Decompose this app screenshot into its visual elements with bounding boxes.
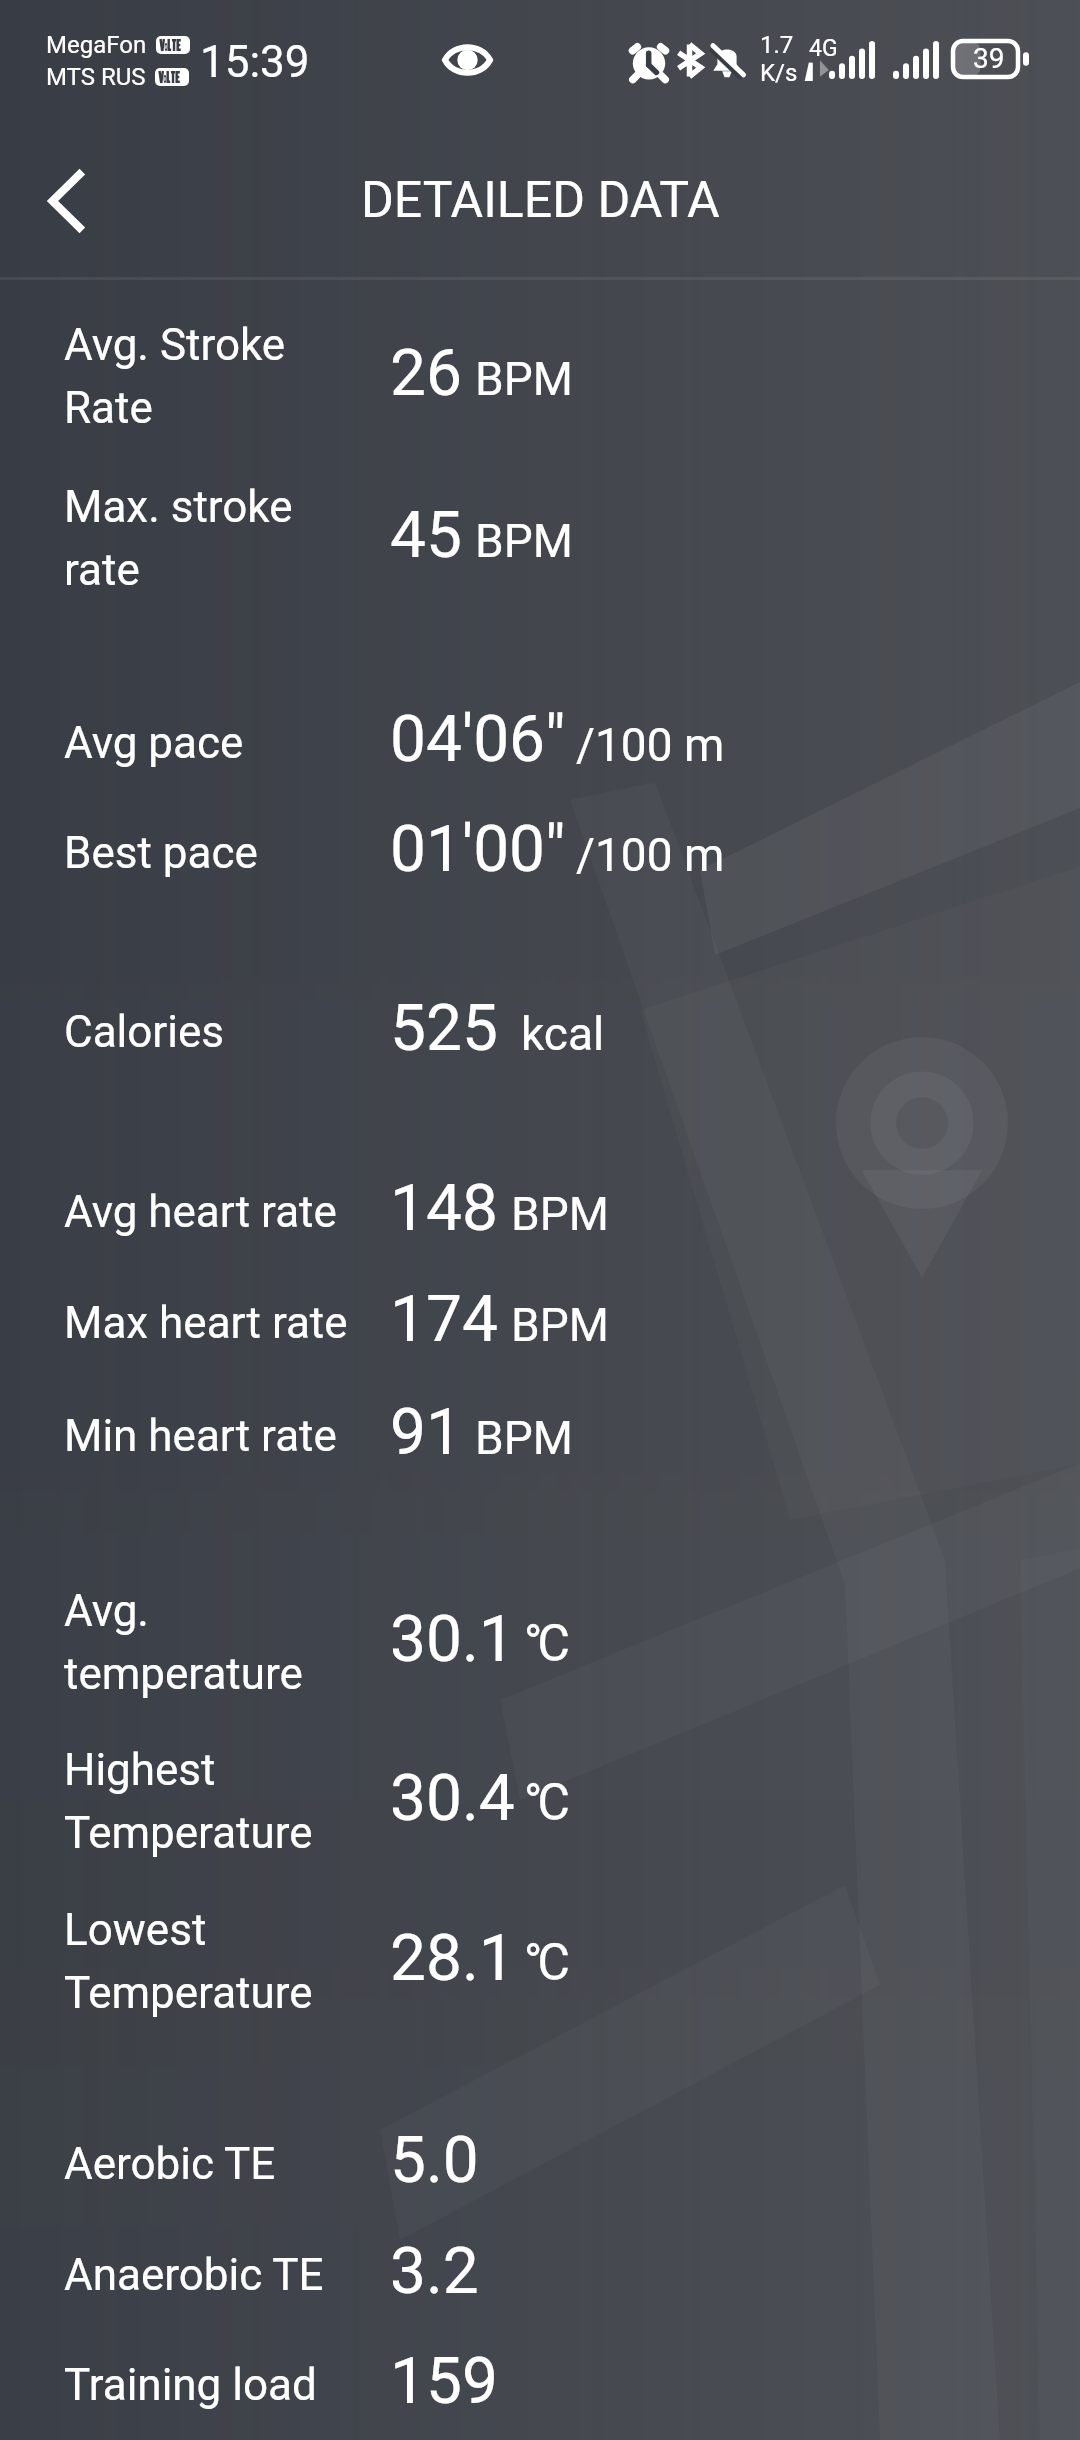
staticText: BPM (511, 1187, 609, 1241)
staticText: /100 m (576, 718, 725, 772)
staticText: ℃ (526, 1933, 570, 1992)
staticText: 1.7 (760, 31, 794, 59)
staticText: Max. stroke rate (64, 481, 364, 596)
staticText: ℃ (526, 1773, 570, 1832)
button[interactable]: Max. stroke rate (0, 458, 1080, 618)
staticText: kcal (521, 1007, 605, 1061)
staticText: DETAILED DATA (361, 171, 720, 230)
staticText: Min heart rate (64, 1410, 337, 1462)
button[interactable]: Back (20, 155, 112, 247)
staticText: Max heart rate (64, 1297, 348, 1349)
staticText: Anaerobic TE (64, 2249, 324, 2301)
staticText: Avg. Stroke Rate (64, 319, 364, 434)
staticText: 15:39 (200, 36, 310, 88)
button[interactable]: Avg pace (0, 687, 1080, 798)
staticText: Training load (64, 2359, 317, 2411)
staticText: BPM (475, 352, 573, 406)
staticText: BPM (475, 1411, 573, 1465)
button[interactable]: Training load (0, 2329, 1080, 2440)
staticText: 3.2 (390, 2234, 479, 2309)
button[interactable]: Best pace (0, 797, 1080, 908)
staticText: 26 (390, 336, 462, 411)
staticText: 5.0 (390, 2123, 479, 2198)
staticText: 91 (390, 1395, 462, 1470)
button[interactable]: Lowest Temperature (0, 1881, 1080, 2041)
staticText: 39 (973, 42, 1005, 75)
staticText: Lowest Temperature (64, 1904, 364, 2019)
staticText: 4G (809, 35, 838, 62)
staticText: 148 (390, 1171, 498, 1246)
staticText: Calories (64, 1006, 225, 1058)
button[interactable]: Avg. temperature (0, 1562, 1080, 1722)
staticText: 04'06" (390, 702, 566, 777)
staticText: 174 (390, 1282, 498, 1357)
staticText: /100 m (576, 828, 725, 882)
staticText: 01'00" (390, 812, 566, 887)
button[interactable]: Avg. Stroke Rate (0, 296, 1080, 456)
staticText: Aerobic TE (64, 2138, 276, 2190)
staticText: 45 (390, 498, 462, 573)
staticText: Avg pace (64, 717, 244, 769)
button[interactable]: Anaerobic TE (0, 2219, 1080, 2330)
staticText: BPM (511, 1298, 609, 1352)
staticText: 28.1 (390, 1921, 515, 1996)
staticText: Avg. temperature (64, 1585, 364, 1700)
staticText: MTS RUS (46, 63, 146, 91)
staticText: Avg heart rate (64, 1186, 337, 1238)
staticText: 525 (390, 991, 498, 1066)
button[interactable]: Calories (0, 976, 1080, 1087)
staticText: BPM (475, 514, 573, 568)
button[interactable]: Min heart rate (0, 1380, 1080, 1491)
staticText: MegaFon (46, 31, 147, 59)
button[interactable]: Max heart rate (0, 1267, 1080, 1378)
staticText: Highest Temperature (64, 1744, 364, 1859)
staticText: Best pace (64, 827, 258, 879)
staticText: K/s (760, 59, 798, 87)
button[interactable]: Avg heart rate (0, 1156, 1080, 1267)
staticText: ℃ (526, 1614, 570, 1673)
staticText: 159 (390, 2344, 498, 2419)
button[interactable]: Highest Temperature (0, 1721, 1080, 1881)
staticText: 30.1 (390, 1602, 515, 1677)
button[interactable]: Aerobic TE (0, 2108, 1080, 2219)
staticText: 30.4 (390, 1761, 515, 1836)
